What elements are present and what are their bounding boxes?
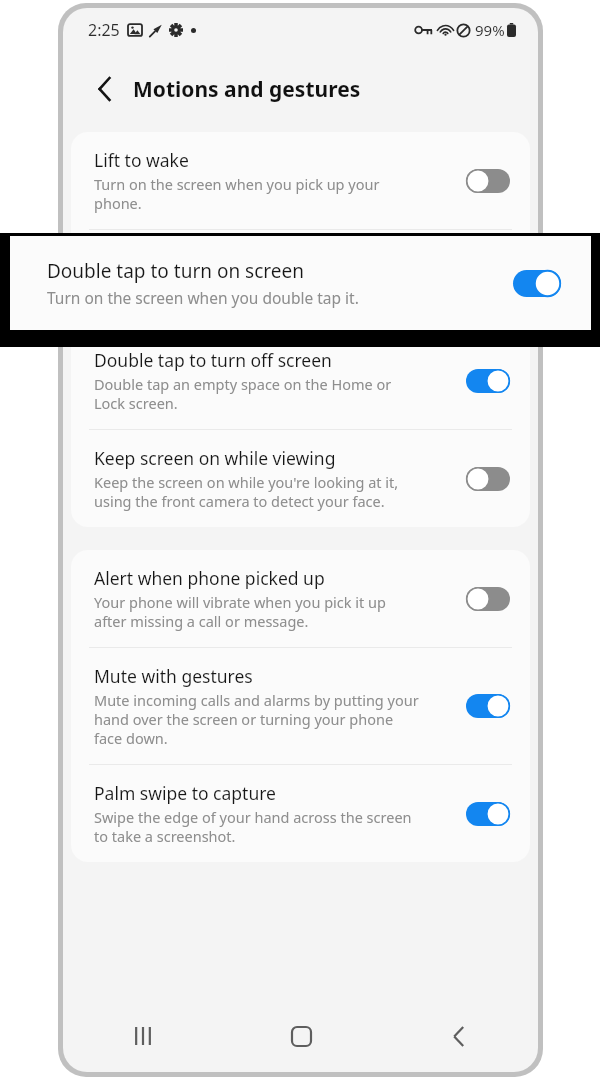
staticText: Alert when phone picked up bbox=[94, 566, 325, 590]
staticText: Mute incoming calls and alarms by puttin… bbox=[94, 690, 419, 748]
staticText: Double tap an empty space on the Home or… bbox=[94, 374, 392, 413]
staticText: Mute with gestures bbox=[94, 664, 253, 688]
button[interactable]: Mute with gestures bbox=[71, 648, 530, 764]
staticText: Turn on the screen when you pick up your… bbox=[94, 174, 380, 213]
button[interactable]: Back bbox=[87, 71, 123, 107]
staticText: 99% bbox=[475, 20, 505, 40]
button[interactable]: Lift to wake bbox=[71, 132, 530, 229]
staticText: Double tap to turn off screen bbox=[94, 348, 332, 372]
staticText: Your phone will vibrate when you pick it… bbox=[94, 592, 386, 631]
staticText: Swipe the edge of your hand across the s… bbox=[94, 807, 412, 846]
staticText: Motions and gestures bbox=[133, 75, 361, 104]
staticText: Turn on the screen when you double tap i… bbox=[47, 287, 359, 308]
staticText: Palm swipe to capture bbox=[94, 781, 276, 805]
button[interactable]: Home bbox=[222, 1008, 380, 1064]
button[interactable]: Back bbox=[380, 1008, 538, 1064]
button[interactable]: Keep screen on while viewing bbox=[71, 430, 530, 527]
staticText: Keep the screen on while you're looking … bbox=[94, 472, 399, 511]
staticText: Lift to wake bbox=[94, 148, 189, 172]
button[interactable]: Double tap to turn off screen bbox=[71, 332, 530, 429]
button[interactable]: Alert when phone picked up bbox=[71, 550, 530, 647]
button[interactable]: Double tap to turn on screen bbox=[10, 236, 591, 330]
staticText: Double tap to turn on screen bbox=[47, 258, 304, 284]
button[interactable]: Recent apps bbox=[63, 1008, 222, 1064]
staticText: 2:25 bbox=[88, 19, 120, 41]
staticText: Keep screen on while viewing bbox=[94, 446, 336, 470]
button[interactable]: Palm swipe to capture bbox=[71, 765, 530, 862]
